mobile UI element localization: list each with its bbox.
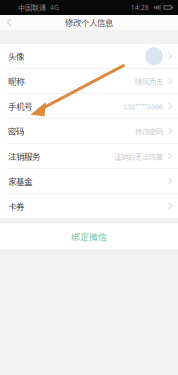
staticText: 中国联通 xyxy=(18,2,46,12)
button[interactable]: Back xyxy=(0,15,19,30)
staticText: 随风而去 xyxy=(135,76,163,86)
staticText: 14:28 xyxy=(131,3,149,12)
button[interactable]: 注销服务 xyxy=(0,144,178,168)
staticText: 4G xyxy=(50,3,59,12)
staticText: 注销后无法恢复 xyxy=(114,151,163,161)
staticText: 注销服务 xyxy=(8,150,40,162)
staticText: 昵称 xyxy=(8,75,24,87)
staticText: 卡券 xyxy=(8,200,24,212)
button[interactable]: 密码 xyxy=(0,119,178,143)
button[interactable]: 手机号 xyxy=(0,94,178,118)
staticText: 绑定微信 xyxy=(71,230,107,243)
staticText: 手机号 xyxy=(8,100,32,112)
button[interactable]: 头像 xyxy=(0,44,178,68)
button[interactable]: 昵称 xyxy=(0,69,178,93)
staticText: 家基金 xyxy=(8,175,32,187)
staticText: 138****8866 xyxy=(123,101,163,111)
staticText: 修改个人信息 xyxy=(65,16,113,28)
button[interactable]: 家基金 xyxy=(0,169,178,193)
button[interactable]: 绑定微信 xyxy=(0,223,178,249)
staticText: 头像 xyxy=(8,50,24,62)
button[interactable]: 卡券 xyxy=(0,194,178,218)
staticText: 密码 xyxy=(8,125,24,137)
staticText: 修改密码 xyxy=(135,126,163,136)
